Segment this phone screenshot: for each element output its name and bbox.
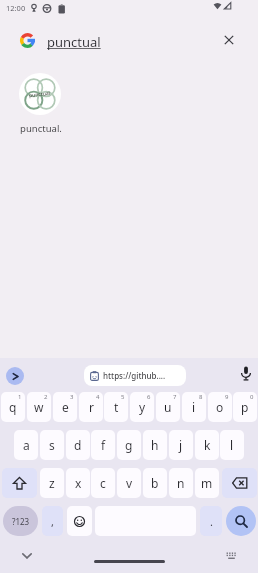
button[interactable]: t <box>104 392 128 422</box>
button[interactable]: ?123 <box>3 506 38 536</box>
staticText: o <box>216 399 224 415</box>
button[interactable]: x <box>66 468 90 498</box>
staticText: 0 <box>250 393 254 401</box>
staticText: r <box>89 399 94 415</box>
staticText: u <box>164 399 172 415</box>
button[interactable] <box>6 367 24 385</box>
staticText: g <box>125 437 133 453</box>
staticText: p <box>241 399 249 415</box>
button[interactable] <box>226 506 256 536</box>
staticText: i <box>192 399 196 415</box>
button[interactable]: c <box>91 468 115 498</box>
button[interactable]: p <box>233 392 257 422</box>
staticText: f <box>101 437 106 453</box>
button[interactable]: r <box>79 392 103 422</box>
staticText: e <box>62 399 69 415</box>
button[interactable]: n <box>169 468 193 498</box>
button[interactable]: l <box>220 430 244 460</box>
button[interactable]: u <box>156 392 180 422</box>
staticText: z <box>49 475 55 491</box>
staticText: h <box>151 437 159 453</box>
button[interactable]: f <box>91 430 115 460</box>
button[interactable]: d <box>66 430 90 460</box>
staticText: 7 <box>173 393 177 401</box>
button[interactable]: i <box>182 392 206 422</box>
staticText: q <box>9 399 17 415</box>
staticText: 4 <box>96 393 100 401</box>
button[interactable]: g <box>117 430 141 460</box>
staticText: y <box>139 399 146 415</box>
staticText: d <box>74 437 82 453</box>
button[interactable]: q <box>1 392 25 422</box>
staticText: punctual. <box>16 122 66 135</box>
staticText: 9 <box>225 393 229 401</box>
staticText: , <box>51 514 54 529</box>
button[interactable]: https://github.... <box>84 365 186 386</box>
staticText: s <box>49 437 55 453</box>
staticText: l <box>230 437 234 453</box>
staticText: https://github.... <box>103 370 166 381</box>
staticText: punctual <box>29 90 51 99</box>
staticText: k <box>204 437 211 453</box>
button[interactable]: s <box>40 430 64 460</box>
staticText: v <box>126 475 133 491</box>
button[interactable]: k <box>195 430 219 460</box>
button[interactable]: j <box>169 430 193 460</box>
button[interactable]: w <box>27 392 51 422</box>
staticText: 1 <box>18 393 22 401</box>
button[interactable] <box>240 366 252 383</box>
button[interactable]: m <box>195 468 219 498</box>
staticText: j <box>179 437 183 453</box>
staticText: 8 <box>199 393 203 401</box>
button[interactable]: punctual <box>47 33 101 51</box>
button[interactable]: h <box>143 430 167 460</box>
button[interactable]: , <box>42 506 63 536</box>
staticText: 2 <box>44 393 48 401</box>
button[interactable]: punctual <box>19 73 61 115</box>
staticText: t <box>114 399 119 415</box>
staticText: x <box>75 475 82 491</box>
button[interactable] <box>222 468 257 498</box>
button[interactable]: v <box>117 468 141 498</box>
staticText: ?123 <box>12 516 30 527</box>
button[interactable]: z <box>40 468 64 498</box>
button[interactable]: b <box>143 468 167 498</box>
button[interactable]: y <box>130 392 154 422</box>
button[interactable] <box>2 468 37 498</box>
staticText: c <box>100 475 106 491</box>
staticText: a <box>23 437 30 453</box>
staticText: m <box>201 475 213 491</box>
staticText: n <box>177 475 185 491</box>
button[interactable] <box>67 506 92 536</box>
staticText: 3 <box>70 393 74 401</box>
staticText: w <box>34 399 44 415</box>
button[interactable]: e <box>53 392 77 422</box>
staticText: b <box>151 475 159 491</box>
staticText: 12:00 <box>6 3 26 13</box>
button[interactable]: o <box>208 392 232 422</box>
staticText: 5 <box>121 393 125 401</box>
staticText: 6 <box>147 393 151 401</box>
button[interactable]: a <box>14 430 38 460</box>
button[interactable]: . <box>200 506 222 536</box>
button[interactable] <box>219 30 239 50</box>
staticText: . <box>210 514 213 529</box>
